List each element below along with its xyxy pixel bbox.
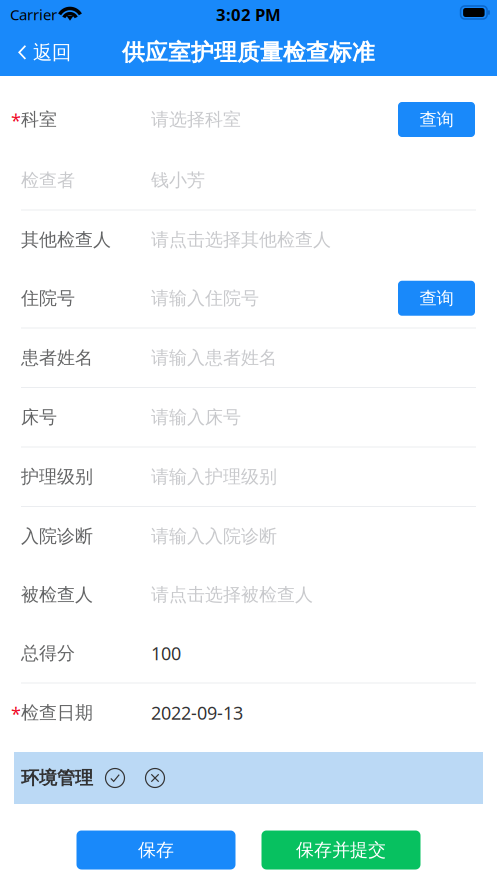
staticText: 检查日期 [21, 701, 93, 724]
staticText: 被检查人 [21, 583, 93, 606]
button[interactable]: 返回 [0, 29, 81, 76]
staticText: 保存并提交 [296, 839, 386, 861]
staticText: 请点击选择其他检查人 [151, 228, 331, 251]
staticText: 护理级别 [21, 465, 93, 488]
staticText: 住院号 [21, 287, 75, 310]
staticText: 请输入护理级别 [151, 465, 277, 488]
button[interactable]: 查询 [398, 102, 475, 137]
staticText: 环境管理 [21, 767, 93, 789]
button[interactable]: 查询 [398, 281, 475, 316]
button[interactable]: 保存并提交 [261, 830, 420, 869]
staticText: 床号 [21, 406, 57, 429]
staticText: 返回 [33, 40, 71, 65]
staticText: 2022-09-13 [151, 700, 243, 725]
button[interactable]: 全部合格 [93, 762, 125, 794]
staticText: 请点击选择被检查人 [151, 583, 313, 606]
staticText: 查询 [419, 109, 453, 130]
staticText: 100 [151, 641, 181, 665]
staticText: 3:02 PM [216, 3, 281, 26]
staticText: 其他检查人 [21, 228, 111, 251]
staticText: 患者姓名 [21, 346, 93, 369]
staticText: 查询 [419, 287, 453, 309]
staticText: 科室 [21, 108, 57, 131]
staticText: * [11, 701, 21, 726]
staticText: 保存 [138, 839, 174, 861]
button[interactable]: 全部不合格 [125, 762, 165, 794]
staticText: 总得分 [21, 642, 75, 665]
staticText: 请输入住院号 [151, 287, 259, 310]
staticText: 入院诊断 [21, 525, 93, 548]
staticText: 供应室护理质量检查标准 [122, 38, 375, 67]
staticText: 请输入患者姓名 [151, 346, 277, 369]
staticText: 请选择科室 [151, 108, 241, 131]
staticText: 检查者 [21, 169, 75, 192]
button[interactable]: 保存 [76, 830, 235, 869]
staticText: 请输入入院诊断 [151, 525, 277, 548]
staticText: 环境整洁、通风、采光良好(2分) [29, 815, 270, 837]
staticText: Carrier [10, 4, 57, 25]
staticText: 钱小芳 [151, 169, 205, 192]
staticText: * [11, 108, 21, 133]
staticText: 请输入床号 [151, 406, 241, 429]
